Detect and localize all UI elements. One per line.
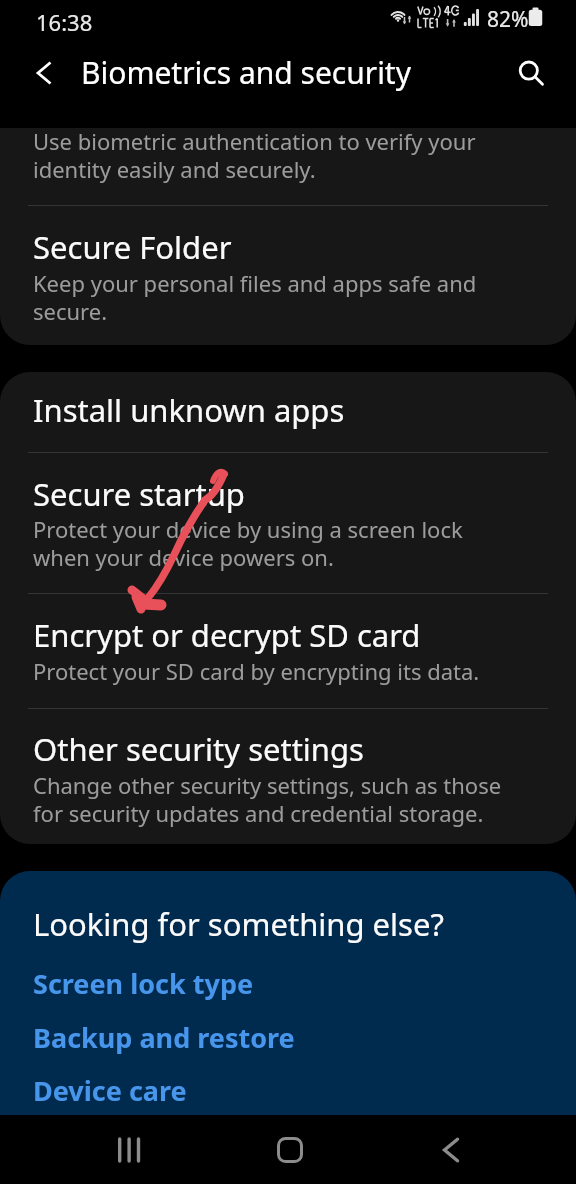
staticText: Other security settings <box>33 733 364 769</box>
button[interactable]: Use biometric authentication to verify y… <box>0 128 576 205</box>
staticText: identity easily and securely. <box>33 156 316 184</box>
button[interactable]: Search <box>516 57 544 85</box>
staticText: Install unknown apps <box>33 394 345 430</box>
staticText: Screen lock type <box>33 970 254 1000</box>
button[interactable]: Home <box>249 1126 331 1174</box>
staticText: Change other security settings, such as … <box>33 772 502 800</box>
button[interactable]: Secure startup <box>0 453 576 593</box>
staticText: Protect your SD card by encrypting its d… <box>33 658 480 686</box>
staticText: 16:38 <box>36 7 93 37</box>
staticText: Use biometric authentication to verify y… <box>33 128 476 156</box>
button[interactable]: Other security settings <box>0 709 576 844</box>
staticText: Secure Folder <box>33 231 232 267</box>
staticText: Encrypt or decrypt SD card <box>33 619 421 655</box>
staticText: secure. <box>33 298 108 326</box>
button[interactable]: Secure Folder <box>0 206 576 326</box>
button[interactable]: Back <box>410 1126 492 1174</box>
staticText: Secure startup <box>33 478 245 514</box>
staticText: Device care <box>33 1077 187 1107</box>
staticText: for security updates and credential stor… <box>33 800 484 828</box>
staticText: when your device powers on. <box>33 544 334 572</box>
button[interactable]: Device care <box>0 1077 576 1107</box>
staticText: Keep your personal files and apps safe a… <box>33 270 477 298</box>
button[interactable]: Encrypt or decrypt SD card <box>0 594 576 708</box>
staticText: 82% <box>487 5 529 34</box>
button[interactable]: Recent apps <box>88 1126 170 1174</box>
button[interactable]: Screen lock type <box>0 970 576 1000</box>
staticText: Backup and restore <box>33 1024 295 1054</box>
button[interactable]: Install unknown apps <box>0 372 576 452</box>
button[interactable]: Navigate up <box>18 47 70 99</box>
staticText: Protect your device by using a screen lo… <box>33 516 463 544</box>
staticText: Biometrics and security <box>81 57 411 91</box>
button[interactable]: Backup and restore <box>0 1024 576 1054</box>
staticText: Looking for something else? <box>33 908 444 944</box>
